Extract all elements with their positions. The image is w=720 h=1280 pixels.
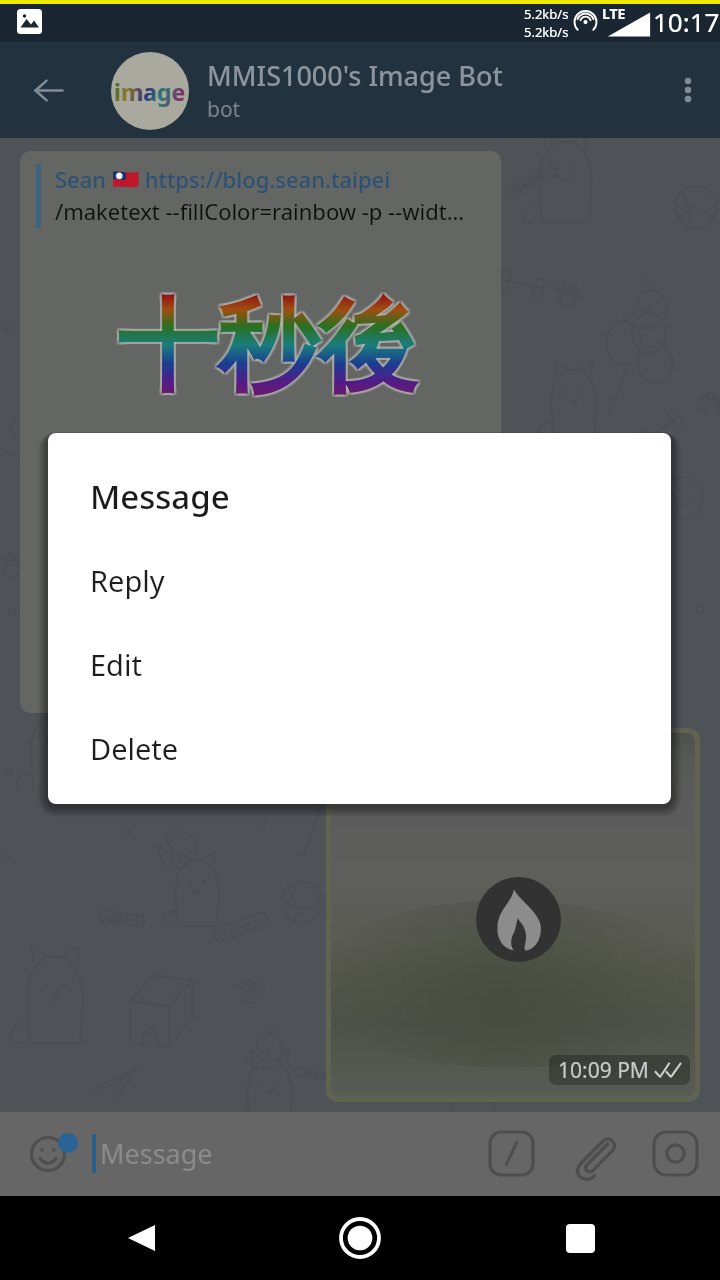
button[interactable]: Sean bbox=[20, 151, 501, 713]
staticText: MMIS1000's Image Bot bbox=[207, 57, 503, 94]
staticText: 十秒後 bbox=[115, 283, 415, 409]
button[interactable]: Delete bbox=[48, 706, 671, 790]
button[interactable]: More options bbox=[656, 58, 720, 122]
staticText: 十秒後 bbox=[119, 285, 419, 411]
staticText: LTE bbox=[602, 4, 626, 23]
staticText: bot bbox=[207, 95, 241, 124]
button[interactable]: Home bbox=[310, 1196, 410, 1280]
staticText: 5.2kb/s bbox=[524, 23, 569, 41]
staticText: Reply bbox=[90, 561, 165, 600]
button[interactable]: Bot commands bbox=[480, 1122, 542, 1184]
button[interactable]: 10:09 PM bbox=[331, 733, 695, 1097]
staticText: 10:09 PM bbox=[558, 1056, 649, 1085]
button[interactable]: Back bbox=[12, 61, 84, 119]
staticText: 十秒後 bbox=[119, 287, 419, 413]
staticText: Sean bbox=[55, 164, 112, 194]
staticText: 5.2kb/s bbox=[524, 5, 569, 23]
staticText: Edit bbox=[90, 645, 142, 684]
button[interactable]: Edit bbox=[48, 622, 671, 706]
staticText: 10:17 bbox=[653, 4, 720, 39]
button[interactable]: Attach bbox=[562, 1122, 624, 1184]
button[interactable]: Reply bbox=[48, 538, 671, 622]
staticText: image bbox=[113, 76, 185, 107]
button[interactable]: Camera bbox=[644, 1122, 706, 1184]
button[interactable]: Emoji bbox=[14, 1120, 82, 1188]
staticText: https://blog.sean.taipei bbox=[139, 164, 391, 194]
staticText: 十秒後 bbox=[115, 285, 415, 411]
staticText: 十秒後 bbox=[115, 287, 415, 413]
staticText: 十秒後 bbox=[117, 283, 417, 409]
button[interactable]: Recents bbox=[530, 1196, 630, 1280]
staticText: 十秒後 bbox=[119, 283, 419, 409]
staticText: Delete bbox=[90, 729, 179, 768]
staticText: 十秒後 bbox=[117, 285, 417, 411]
staticText: image bbox=[114, 76, 186, 107]
button[interactable]: Back bbox=[91, 1196, 191, 1280]
staticText: 十秒後 bbox=[117, 287, 417, 413]
staticText: Message bbox=[100, 1135, 213, 1172]
staticText: Message bbox=[90, 474, 230, 519]
staticText: image bbox=[115, 76, 187, 107]
staticText: /maketext --fillColor=rainbow -p --widt… bbox=[55, 196, 465, 226]
